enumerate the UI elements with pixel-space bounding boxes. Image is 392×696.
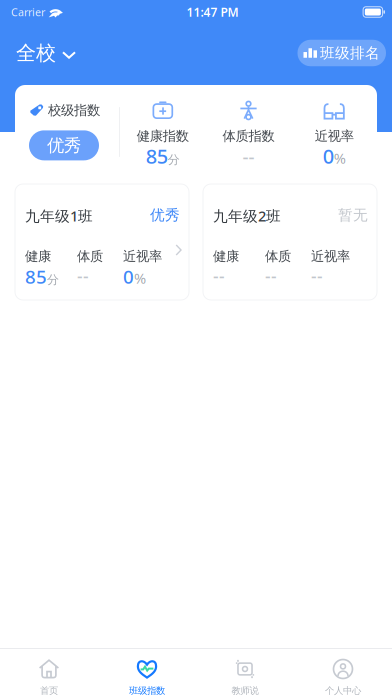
staticText: 九年级1班 (25, 206, 93, 225)
staticText: 0 (123, 264, 134, 289)
staticText: -- (265, 264, 277, 287)
staticText: 暂无 (338, 206, 368, 224)
staticText: 九年级2班 (213, 206, 281, 225)
staticText: 教师说 (231, 685, 258, 696)
staticText: 个人中心 (325, 685, 361, 696)
staticText: 85 (25, 264, 47, 289)
staticText: 班级排名 (320, 44, 380, 62)
button[interactable]: 个人中心 (294, 649, 392, 696)
staticText: 近视率 (123, 248, 162, 264)
button[interactable]: 九年级1班 (15, 184, 189, 300)
staticText: 体质 (77, 248, 103, 264)
button[interactable]: 九年级2班 (203, 184, 377, 300)
staticText: 近视率 (315, 128, 354, 144)
staticText: Carrier (11, 5, 45, 19)
button[interactable]: 班级排名 (297, 40, 386, 66)
staticText: 体质 (265, 248, 291, 264)
staticText: 首页 (40, 685, 58, 696)
button[interactable]: 全校 (16, 38, 75, 68)
staticText: -- (242, 144, 254, 168)
button[interactable]: 优秀 (29, 130, 99, 160)
staticText: 近视率 (311, 248, 350, 264)
button[interactable]: 首页 (0, 649, 98, 696)
staticText: 85 (146, 143, 168, 169)
staticText: % (334, 148, 346, 168)
staticText: 分 (168, 152, 180, 167)
staticText: -- (311, 264, 323, 287)
staticText: 校级指数 (48, 102, 100, 118)
staticText: 优秀 (47, 135, 81, 156)
staticText: % (134, 268, 146, 288)
staticText: 分 (47, 272, 59, 287)
staticText: 0 (323, 143, 334, 169)
button[interactable]: 班级指数 (98, 649, 196, 696)
staticText: -- (77, 264, 89, 287)
staticText: 班级指数 (129, 685, 165, 696)
staticText: 全校 (16, 41, 56, 65)
staticText: 体质指数 (222, 128, 274, 144)
staticText: 优秀 (150, 206, 180, 224)
staticText: 11:47 PM (187, 4, 239, 20)
staticText: 健康指数 (137, 128, 189, 144)
staticText: 健康 (213, 248, 239, 264)
staticText: 健康 (25, 248, 51, 264)
button[interactable]: 教师说 (196, 649, 294, 696)
staticText: -- (213, 264, 225, 287)
